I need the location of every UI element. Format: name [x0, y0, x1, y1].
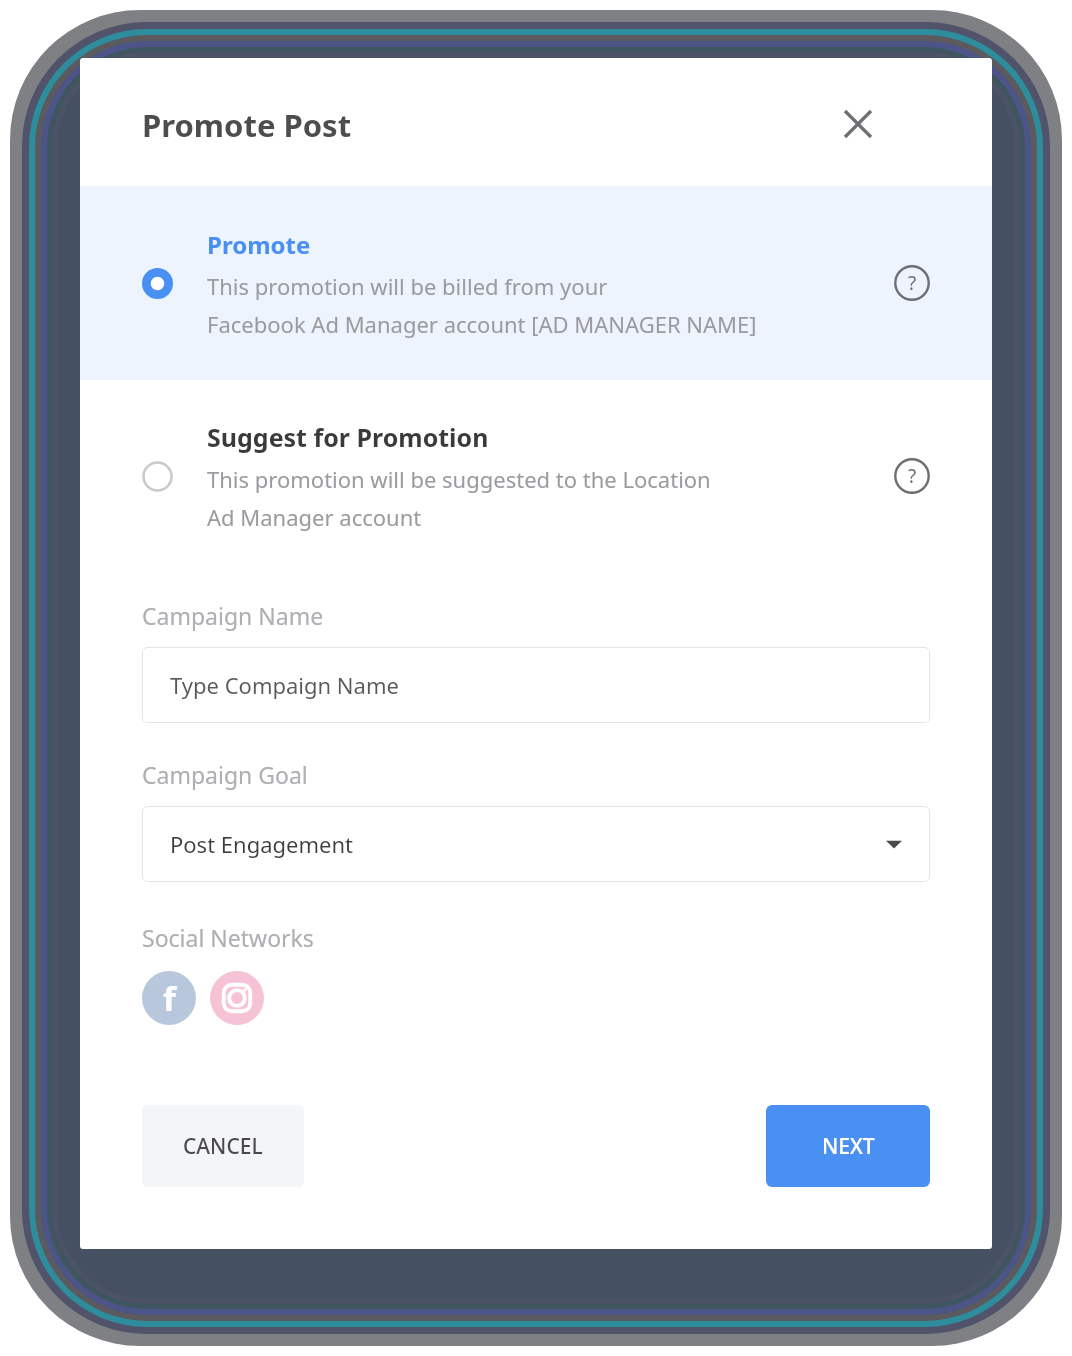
staticText: Campaign Name: [142, 600, 324, 631]
staticText: Suggest for Promotion: [207, 420, 489, 454]
staticText: Social Networks: [142, 922, 314, 953]
staticText: Type Compaign Name: [170, 670, 399, 700]
staticText: This promotion will be billed from your: [207, 271, 608, 301]
staticText: Ad Manager account: [207, 502, 422, 532]
staticText: Campaign Goal: [142, 759, 308, 790]
staticText: Promote: [207, 228, 311, 261]
staticText: Post Engagement: [170, 829, 353, 859]
button[interactable]: Post Engagement: [142, 806, 930, 882]
button[interactable]: Close: [832, 98, 884, 150]
button[interactable]: Instagram: [210, 971, 264, 1025]
button[interactable]: Help: [890, 454, 934, 498]
staticText: ?: [908, 270, 917, 296]
staticText: This promotion will be suggested to the …: [207, 464, 711, 494]
staticText: CANCEL: [183, 1132, 263, 1161]
staticText: Facebook Ad Manager account [AD MANAGER …: [207, 309, 757, 339]
button[interactable]: Promote: [80, 186, 992, 380]
button[interactable]: Facebook: [142, 971, 196, 1025]
button[interactable]: Suggest for Promotion: [80, 380, 992, 572]
staticText: f: [163, 976, 176, 1021]
button[interactable]: Help: [890, 261, 934, 305]
button[interactable]: CANCEL: [142, 1105, 304, 1187]
staticText: ?: [908, 463, 917, 489]
staticText: NEXT: [822, 1132, 875, 1161]
button[interactable]: NEXT: [766, 1105, 930, 1187]
staticText: Promote Post: [142, 104, 352, 146]
button[interactable]: Type Compaign Name: [142, 647, 930, 723]
